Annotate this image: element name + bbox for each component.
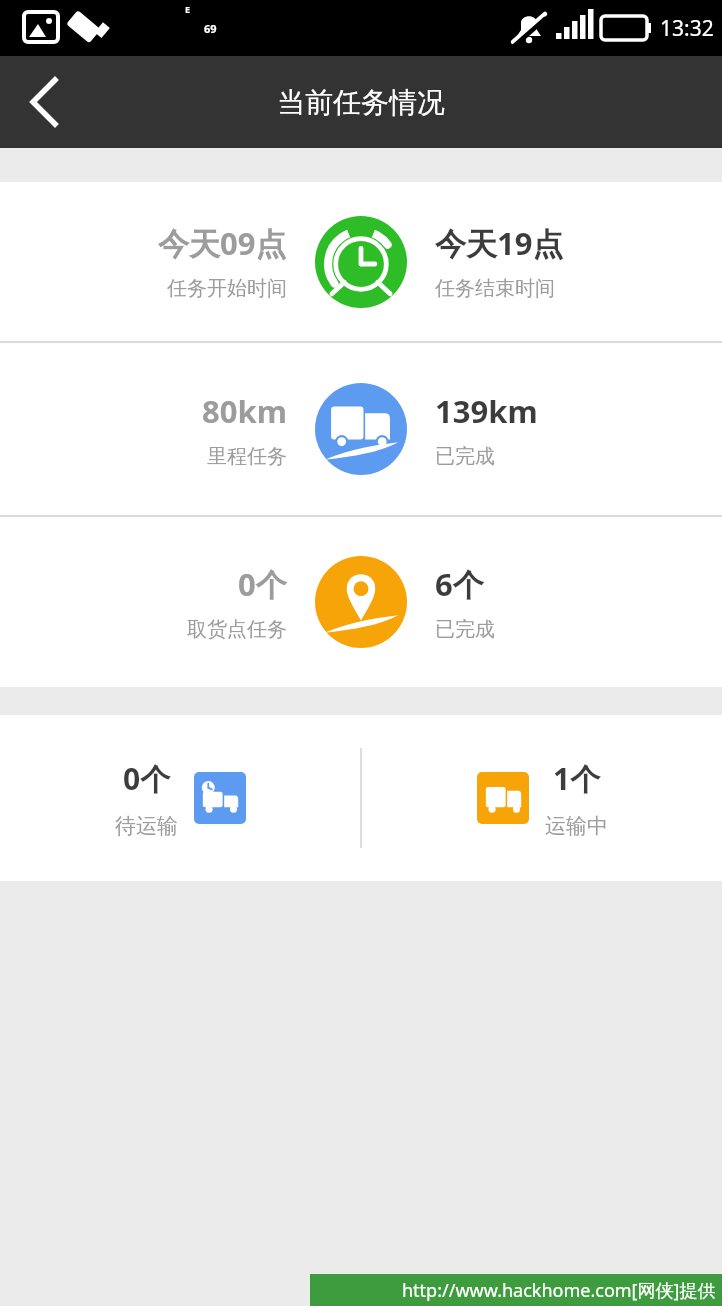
staticText: 1个: [553, 758, 601, 799]
other: Mileage: [315, 383, 407, 475]
staticText: 待运输: [115, 813, 178, 839]
staticText: 今天19点: [435, 222, 564, 264]
staticText: 69: [204, 21, 217, 36]
staticText: 139km: [435, 390, 538, 432]
other: Pickup points: [315, 556, 407, 648]
staticText: 已完成: [435, 444, 495, 469]
staticText: 6个: [435, 563, 484, 605]
button[interactable]: In transit: [362, 715, 722, 881]
staticText: 取货点任务: [187, 617, 287, 642]
staticText: E: [185, 3, 191, 15]
other: In transit: [477, 772, 529, 824]
staticText: 当前任务情况: [277, 85, 445, 120]
staticText: 里程任务: [207, 444, 287, 469]
button[interactable]: 今天09点: [0, 182, 722, 341]
staticText: 任务结束时间: [435, 276, 555, 301]
staticText: 今天09点: [158, 222, 287, 264]
staticText: 80km: [202, 390, 287, 432]
other: Pending shipment: [194, 772, 246, 824]
staticText: 已完成: [435, 617, 495, 642]
other: Task time: [315, 216, 407, 308]
button[interactable]: 0个: [0, 517, 722, 687]
staticText: 运输中: [545, 813, 608, 839]
button[interactable]: 80km: [0, 343, 722, 515]
button[interactable]: 0个: [0, 715, 360, 881]
button[interactable]: Back: [0, 62, 80, 142]
staticText: 0个: [123, 758, 171, 799]
staticText: 任务开始时间: [167, 276, 287, 301]
staticText: 0个: [238, 563, 287, 605]
staticText: http://www.hackhome.com[网侠]提供: [402, 1278, 716, 1303]
staticText: 13:32: [660, 14, 714, 43]
